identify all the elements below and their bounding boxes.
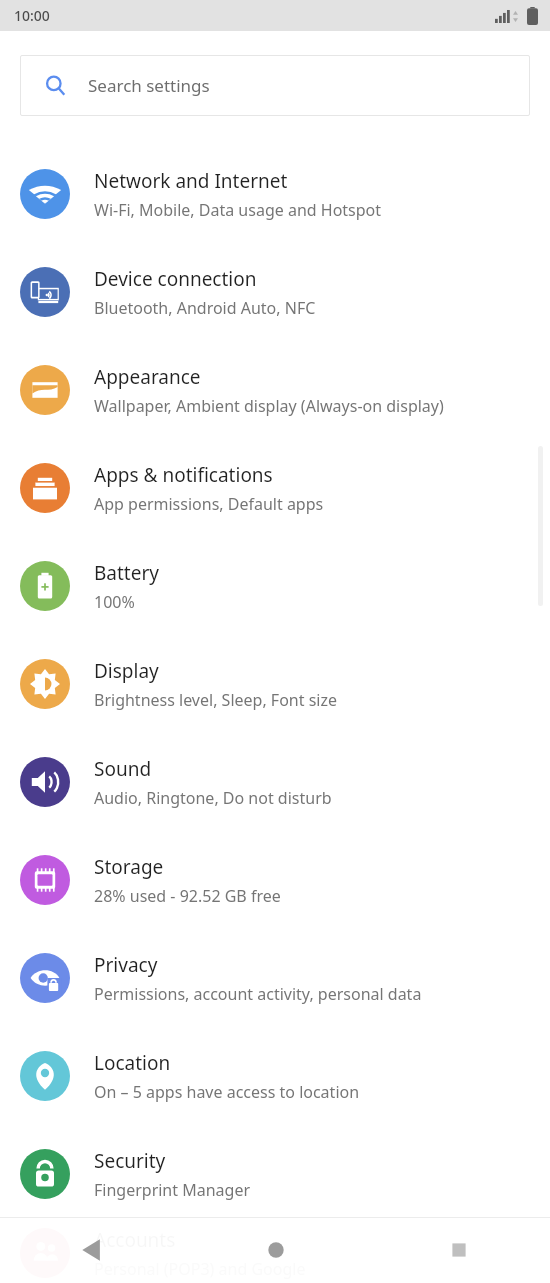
staticText: Accounts (94, 1227, 176, 1253)
staticText: Permissions, account activity, personal … (94, 983, 422, 1005)
staticText: Wi-Fi, Mobile, Data usage and Hotspot (94, 199, 382, 221)
staticText: Brightness level, Sleep, Font size (94, 689, 337, 711)
staticText: App permissions, Default apps (94, 493, 324, 515)
button[interactable]: Privacy (0, 929, 550, 1027)
staticText: Location (94, 1050, 171, 1076)
staticText: Appearance (94, 364, 201, 390)
button[interactable]: Home (184, 1217, 367, 1283)
button[interactable]: Location (0, 1027, 550, 1125)
button[interactable]: Back (0, 1217, 184, 1283)
staticText: Security (94, 1148, 166, 1174)
button[interactable]: Battery (0, 537, 550, 635)
staticText: Bluetooth, Android Auto, NFC (94, 297, 316, 319)
button[interactable]: Recents (367, 1217, 550, 1283)
staticText: 100% (94, 591, 135, 613)
staticText: Wallpaper, Ambient display (Always-on di… (94, 395, 444, 417)
staticText: Audio, Ringtone, Do not disturb (94, 787, 332, 809)
staticText: Privacy (94, 952, 158, 978)
staticText: Search settings (88, 74, 210, 97)
button[interactable]: Network and Internet (0, 145, 550, 243)
staticText: Sound (94, 756, 152, 782)
staticText: On – 5 apps have access to location (94, 1081, 360, 1103)
button[interactable]: Search settings (20, 55, 530, 116)
staticText: 28% used - 92.52 GB free (94, 885, 281, 907)
button[interactable]: Accounts (0, 1223, 550, 1283)
button[interactable]: Display (0, 635, 550, 733)
staticText: Fingerprint Manager (94, 1179, 251, 1201)
button[interactable]: Appearance (0, 341, 550, 439)
staticText: Battery (94, 560, 159, 586)
staticText: Display (94, 658, 159, 684)
staticText: Network and Internet (94, 168, 288, 194)
button[interactable]: Storage (0, 831, 550, 929)
button[interactable]: Security (0, 1125, 550, 1223)
staticText: Device connection (94, 266, 257, 292)
staticText: Apps & notifications (94, 462, 273, 488)
staticText: Storage (94, 854, 164, 880)
staticText: Personal (POP3) and Google (94, 1258, 306, 1280)
staticText: 10:00 (14, 6, 50, 25)
button[interactable]: Sound (0, 733, 550, 831)
button[interactable]: Apps & notifications (0, 439, 550, 537)
button[interactable]: Device connection (0, 243, 550, 341)
